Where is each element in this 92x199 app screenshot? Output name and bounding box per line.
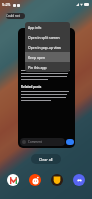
button[interactable]: Reddit <box>29 174 41 186</box>
staticText: Could not open app <box>6 14 25 18</box>
button[interactable]: Comment <box>20 138 65 146</box>
staticText: Open in pop-up view <box>28 45 61 50</box>
staticText: Open in split screen view <box>28 35 67 40</box>
staticText: Comment <box>28 140 42 144</box>
button[interactable]: Clear all <box>31 154 61 164</box>
button[interactable]: Open in split screen view <box>25 32 70 42</box>
staticText: Related posts <box>21 85 42 89</box>
button[interactable]: UPS <box>51 174 63 186</box>
button[interactable]: Open in pop-up view <box>25 42 70 52</box>
button[interactable]: Could not open app <box>6 13 25 19</box>
button[interactable]: App info <box>25 22 70 32</box>
staticText: Keep open <box>28 55 46 60</box>
button[interactable]: Gmail <box>7 174 19 186</box>
staticText: Pin this app <box>28 65 47 70</box>
button[interactable]: Pin this app <box>25 62 70 72</box>
staticText: 5:25 <box>2 2 11 8</box>
button[interactable]: Discord <box>73 174 85 186</box>
button[interactable]: Keep open <box>25 52 70 62</box>
staticText: Clear all <box>39 157 53 162</box>
staticText: App info <box>28 25 42 30</box>
button[interactable]: Send <box>66 139 74 145</box>
button[interactable]: Related posts <box>18 28 75 148</box>
